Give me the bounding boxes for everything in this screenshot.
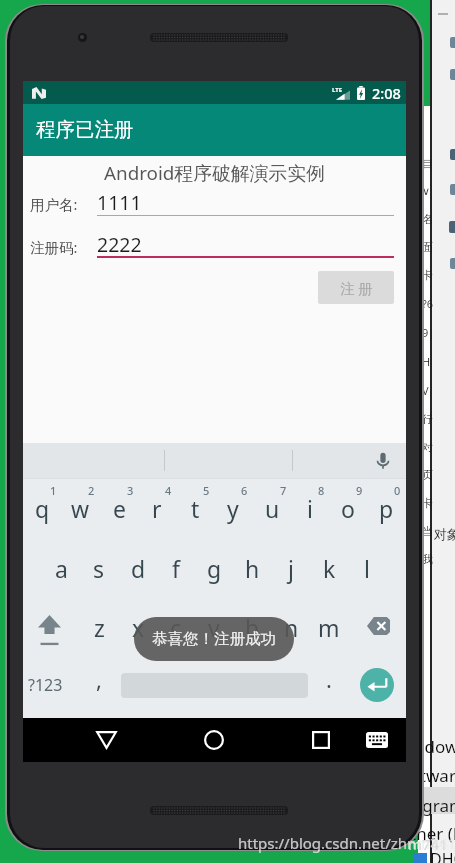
staticText: r — [152, 493, 162, 524]
staticText: DHC C — [430, 848, 455, 863]
staticText: l — [364, 553, 370, 584]
button[interactable]: Space — [119, 658, 310, 718]
button[interactable]: f — [157, 539, 195, 599]
button[interactable]: s — [80, 539, 118, 599]
button[interactable]: h — [233, 539, 271, 599]
button[interactable]: 3 — [100, 479, 138, 539]
staticText: m741 — [408, 834, 448, 854]
staticText: o — [341, 493, 355, 524]
staticText: 行 — [422, 412, 433, 426]
button[interactable]: Enter — [348, 655, 405, 715]
button[interactable]: l — [348, 539, 386, 599]
staticText: 我 — [422, 552, 433, 566]
button[interactable]: j — [272, 539, 310, 599]
staticText: g — [207, 553, 222, 584]
staticText: V — [422, 383, 429, 398]
button[interactable]: 8 — [291, 479, 329, 539]
button[interactable]: 7 — [253, 479, 291, 539]
button[interactable]: Backspace — [348, 598, 405, 658]
staticText: 恭喜您！注册成功 — [152, 629, 276, 649]
button[interactable]: 9 — [329, 479, 367, 539]
staticText: i — [307, 493, 313, 524]
staticText: 卡 — [422, 496, 433, 510]
staticText: 6 — [241, 483, 248, 498]
staticText: H — [422, 354, 431, 369]
button[interactable]: 5 — [176, 479, 214, 539]
staticText: 1111 — [97, 189, 142, 216]
staticText: 2:08 — [372, 83, 401, 103]
button[interactable]: Switch keyboard — [352, 718, 402, 762]
button[interactable]: Voice input — [371, 449, 395, 473]
staticText: ndow — [414, 735, 455, 758]
staticText: 2 — [88, 483, 95, 498]
staticText: c — [170, 612, 182, 643]
button[interactable]: c — [157, 598, 195, 658]
staticText: 页 — [422, 468, 433, 482]
staticText: u — [265, 493, 280, 524]
staticText: 面 — [422, 240, 433, 254]
button[interactable]: Back — [66, 718, 146, 762]
staticText: x — [132, 612, 145, 643]
button[interactable]: , — [80, 658, 118, 718]
staticText: https://blog.csdn.net/zhnm741 — [238, 833, 455, 853]
staticText: h — [245, 553, 260, 584]
staticText: 注册码: — [30, 237, 78, 257]
staticText: 0 — [394, 483, 401, 498]
button[interactable]: 6 — [214, 479, 252, 539]
staticText: j — [288, 553, 294, 584]
staticText: 当 — [422, 524, 433, 538]
button[interactable]: 2 — [61, 479, 99, 539]
staticText: s — [93, 553, 105, 584]
button[interactable]: 4 — [138, 479, 176, 539]
staticText: , — [96, 664, 102, 694]
button[interactable]: Shift — [23, 598, 80, 658]
button[interactable]: g — [195, 539, 233, 599]
staticText: v — [208, 612, 220, 643]
button[interactable]: ?123 — [23, 658, 80, 718]
staticText: y — [227, 493, 239, 524]
staticText: e — [113, 493, 126, 524]
staticText: k — [323, 553, 336, 584]
staticText: ther (P — [410, 822, 455, 845]
button[interactable]: k — [310, 539, 348, 599]
button[interactable]: d — [119, 539, 157, 599]
staticText: 卡 — [422, 268, 433, 282]
staticText: 9 — [422, 325, 429, 340]
button[interactable]: 1 — [23, 479, 61, 539]
staticText: 7 — [280, 483, 287, 498]
button[interactable]: z — [80, 598, 118, 658]
button[interactable]: b — [233, 598, 271, 658]
staticText: d — [131, 553, 146, 584]
staticText: 注 册 — [340, 278, 373, 298]
staticText: 5 — [203, 483, 210, 498]
button[interactable]: x — [119, 598, 157, 658]
staticText: m — [318, 612, 340, 643]
staticText: 程序已注册 — [36, 117, 134, 142]
staticText: ogram — [412, 794, 455, 817]
staticText: 目 — [422, 157, 433, 171]
staticText: f — [172, 553, 180, 584]
button[interactable]: m — [310, 598, 348, 658]
staticText: 对象 — [434, 526, 455, 542]
button[interactable]: 注 册 — [318, 271, 394, 304]
button[interactable]: Home — [174, 718, 254, 762]
staticText: a — [55, 553, 68, 584]
staticText: 3 — [127, 483, 134, 498]
button[interactable]: 0 — [367, 479, 405, 539]
staticText: 对 — [422, 440, 433, 454]
staticText: 2222 — [97, 231, 142, 258]
staticText: LTE — [332, 86, 343, 94]
button[interactable]: Recent apps — [281, 718, 361, 762]
staticText: ?6 — [422, 296, 434, 311]
staticText: w — [71, 493, 90, 524]
button[interactable]: a — [42, 539, 80, 599]
staticText: t — [191, 493, 200, 524]
button[interactable]: v — [195, 598, 233, 658]
staticText: z — [94, 612, 105, 643]
staticText: . — [326, 664, 332, 694]
staticText: ∨ — [422, 185, 431, 198]
button[interactable]: . — [310, 658, 348, 718]
button[interactable]: n — [272, 598, 310, 658]
staticText: ?123 — [28, 674, 63, 696]
staticText: 9 — [356, 483, 363, 498]
